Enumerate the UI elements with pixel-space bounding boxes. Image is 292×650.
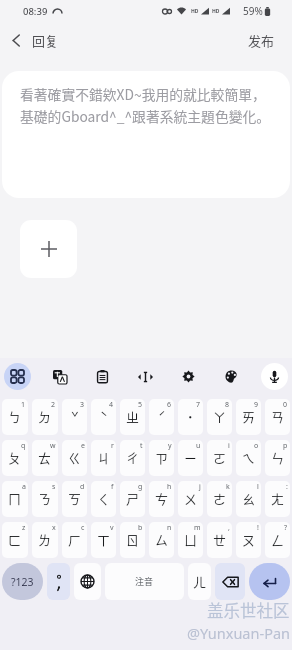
button[interactable]: p — [265, 440, 290, 476]
button[interactable]: d — [62, 481, 87, 517]
button[interactable]: Back — [0, 25, 69, 56]
staticText: ㄓ — [126, 407, 140, 426]
staticText: 回复 — [32, 31, 59, 50]
staticText: ㄗ — [155, 448, 169, 467]
button[interactable]: Add image — [20, 220, 77, 278]
button[interactable]: 发布 — [231, 24, 292, 57]
button[interactable]: n — [149, 522, 174, 558]
button[interactable]: z — [2, 522, 28, 558]
staticText: 59% — [243, 4, 263, 18]
button[interactable]: Backspace — [215, 563, 245, 600]
staticText: ㄉ — [38, 407, 52, 426]
button[interactable]: h — [149, 481, 174, 517]
button[interactable]: j — [178, 481, 203, 517]
button[interactable]: y — [149, 440, 174, 476]
staticText: s — [52, 482, 56, 492]
staticText: ㄝ — [213, 530, 227, 549]
button[interactable]: r — [91, 440, 116, 476]
staticText: HD — [212, 8, 220, 15]
staticText: ㄦ — [193, 572, 207, 591]
button[interactable]: Themes — [218, 363, 245, 390]
staticText: ˙ — [187, 407, 194, 426]
button[interactable]: q — [2, 440, 28, 476]
button[interactable]: 3 — [62, 399, 87, 435]
button[interactable]: 5 — [120, 399, 145, 435]
button[interactable] — [47, 563, 70, 600]
staticText: ㄙ — [155, 530, 169, 549]
staticText: 1 — [21, 400, 26, 410]
button[interactable]: ? — [265, 522, 290, 558]
staticText: 2 — [51, 400, 56, 410]
button[interactable]: Apps — [4, 363, 31, 390]
staticText: k — [226, 482, 230, 492]
staticText: 9 — [254, 400, 259, 410]
staticText: ㄑ — [97, 489, 111, 508]
button[interactable]: v — [91, 522, 116, 558]
button[interactable]: g — [120, 481, 145, 517]
staticText: ˇ — [71, 407, 79, 426]
staticText: ㄛ — [213, 448, 227, 467]
button[interactable]: : — [265, 481, 290, 517]
staticText: 0 — [283, 400, 288, 410]
staticText: ㄚ — [213, 407, 227, 426]
button[interactable]: Settings — [175, 363, 202, 390]
button[interactable]: 6 — [149, 399, 174, 435]
button[interactable]: , — [207, 522, 232, 558]
button[interactable]: k — [207, 481, 232, 517]
button[interactable]: Translate — [46, 363, 73, 390]
button[interactable]: o — [236, 440, 261, 476]
staticText: a — [22, 482, 26, 492]
button[interactable]: Text editing — [132, 363, 159, 390]
button[interactable]: ㄦ — [188, 563, 211, 600]
button[interactable]: Change language — [74, 563, 101, 600]
staticText: f — [111, 482, 114, 492]
button[interactable]: m — [178, 522, 203, 558]
button[interactable]: 4 — [91, 399, 116, 435]
staticText: w — [50, 441, 56, 451]
staticText: ㄤ — [271, 489, 285, 508]
staticText: r — [111, 441, 114, 451]
button[interactable]: x — [32, 522, 58, 558]
staticText: : — [286, 482, 288, 492]
button[interactable]: i — [207, 440, 232, 476]
staticText: ㄐ — [97, 448, 111, 467]
button[interactable]: u — [178, 440, 203, 476]
button[interactable]: c — [62, 522, 87, 558]
staticText: ! — [257, 523, 259, 533]
staticText: h — [167, 482, 172, 492]
button[interactable]: t — [120, 440, 145, 476]
button[interactable]: e — [62, 440, 87, 476]
button[interactable]: 注音 — [105, 563, 184, 600]
button[interactable]: ?123 — [2, 563, 43, 600]
staticText: x — [52, 523, 56, 533]
button[interactable]: l — [236, 481, 261, 517]
button[interactable]: 1 — [2, 399, 28, 435]
button[interactable]: Voice input — [261, 363, 288, 390]
button[interactable]: 2 — [32, 399, 58, 435]
staticText: ㄕ — [126, 489, 140, 508]
button[interactable]: w — [32, 440, 58, 476]
staticText: i — [228, 441, 230, 451]
button[interactable]: 7 — [178, 399, 203, 435]
staticText: b — [138, 523, 143, 533]
staticText: ㄏ — [68, 530, 82, 549]
button[interactable]: Clipboard — [89, 363, 116, 390]
button[interactable]: b — [120, 522, 145, 558]
staticText: 看著確實不錯欸XD~我用的就比較簡單， 基礎的Gboard^_^跟著系統主題色變… — [20, 84, 271, 126]
other: Back — [11, 33, 22, 48]
button[interactable]: s — [32, 481, 58, 517]
staticText: ㄔ — [126, 448, 140, 467]
button[interactable]: ! — [236, 522, 261, 558]
staticText: ?123 — [11, 575, 34, 589]
button[interactable]: f — [91, 481, 116, 517]
staticText: ? — [284, 523, 288, 533]
button[interactable]: a — [2, 481, 28, 517]
button[interactable]: Enter — [249, 563, 290, 600]
staticText: j — [199, 482, 201, 492]
button[interactable]: 0 — [265, 399, 290, 435]
button[interactable]: 看著確實不錯欸XD~我用的就比較簡單， 基礎的Gboard^_^跟著系統主題色變… — [2, 71, 290, 198]
staticText: ㄅ — [8, 407, 22, 426]
button[interactable]: 9 — [236, 399, 261, 435]
staticText: ㄜ — [213, 489, 227, 508]
button[interactable]: 8 — [207, 399, 232, 435]
